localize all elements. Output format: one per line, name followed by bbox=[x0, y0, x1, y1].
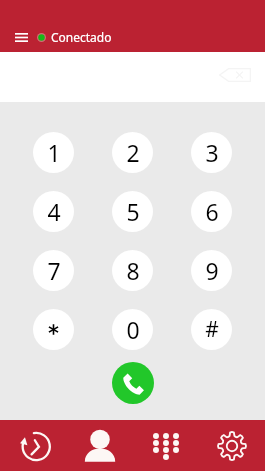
staticText: # bbox=[205, 315, 219, 344]
staticText: 8 bbox=[126, 255, 140, 286]
button[interactable]: 4 bbox=[33, 191, 74, 232]
button[interactable]: 1 bbox=[33, 132, 74, 173]
button[interactable]: 0 bbox=[112, 309, 153, 350]
button[interactable]: 5 bbox=[112, 191, 153, 232]
button[interactable]: # bbox=[191, 309, 232, 350]
staticText: 3 bbox=[205, 137, 219, 168]
button[interactable]: Recents bbox=[0, 420, 67, 471]
button[interactable]: Settings bbox=[199, 420, 265, 471]
button[interactable]: 6 bbox=[191, 191, 232, 232]
staticText: 6 bbox=[205, 196, 219, 227]
button[interactable]: 3 bbox=[191, 132, 232, 173]
button[interactable]: Dialpad bbox=[133, 420, 199, 471]
button[interactable]: 7 bbox=[33, 250, 74, 291]
button[interactable]: Backspace bbox=[219, 68, 251, 82]
staticText: 9 bbox=[205, 255, 219, 286]
staticText: 1 bbox=[47, 137, 61, 168]
button[interactable]: 2 bbox=[112, 132, 153, 173]
button[interactable]: 9 bbox=[191, 250, 232, 291]
staticText: 2 bbox=[126, 137, 140, 168]
button[interactable]: 8 bbox=[112, 250, 153, 291]
button[interactable] bbox=[33, 309, 74, 350]
staticText: 4 bbox=[47, 196, 61, 227]
button[interactable]: Contacts bbox=[67, 420, 133, 471]
staticText: 5 bbox=[126, 196, 140, 227]
staticText: Conectado bbox=[51, 29, 112, 45]
button[interactable]: Call bbox=[112, 362, 154, 404]
staticText: 7 bbox=[47, 255, 61, 286]
button[interactable]: Menu bbox=[10, 26, 32, 48]
staticText: 0 bbox=[126, 314, 140, 345]
